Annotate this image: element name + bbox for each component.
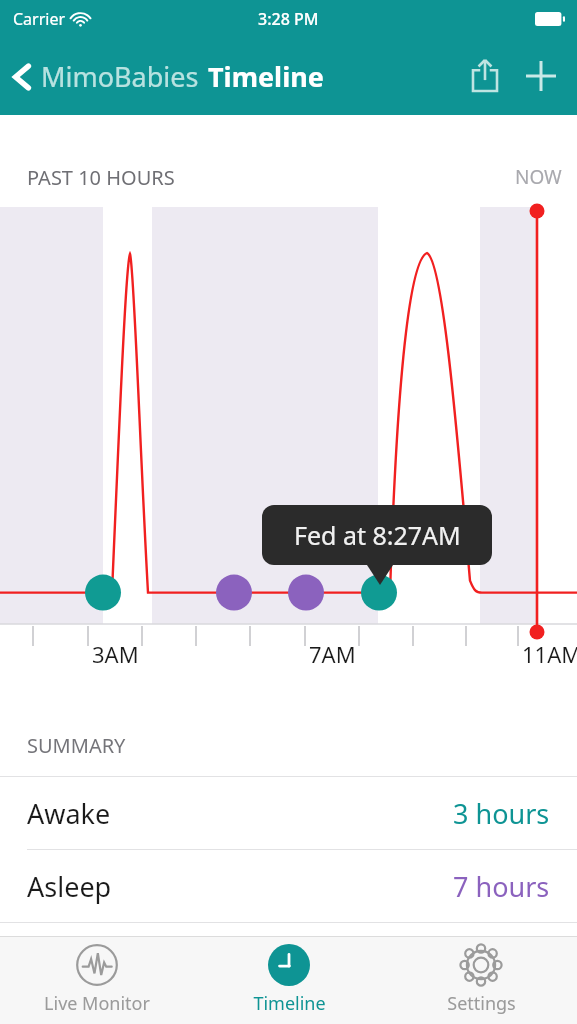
button[interactable]: Fed at 8:27AM xyxy=(262,505,492,565)
staticText: 3 hours xyxy=(453,795,550,832)
button[interactable]: Timeline xyxy=(193,936,385,1024)
staticText: Live Monitor xyxy=(44,991,150,1016)
staticText: Asleep xyxy=(27,868,112,905)
button[interactable]: MimoBabies xyxy=(0,52,332,101)
button[interactable]: Live Monitor xyxy=(0,936,193,1024)
staticText: 7 hours xyxy=(453,868,550,905)
staticText: Carrier xyxy=(13,8,66,30)
staticText: NOW xyxy=(515,164,562,190)
staticText: Settings xyxy=(447,991,516,1016)
button[interactable]: Asleep xyxy=(0,850,577,922)
staticText: 3AM xyxy=(92,639,139,669)
staticText: Fed at 8:27AM xyxy=(294,518,461,552)
staticText: 3:28 PM xyxy=(258,8,319,30)
staticText: 7AM xyxy=(309,639,356,669)
button[interactable]: Settings xyxy=(385,936,577,1024)
button[interactable]: Awake xyxy=(0,777,577,849)
staticText: PAST 10 HOURS xyxy=(27,164,175,191)
staticText: SUMMARY xyxy=(27,732,126,759)
staticText: Awake xyxy=(27,795,111,832)
staticText: Timeline xyxy=(208,58,324,95)
staticText: MimoBabies xyxy=(41,58,199,95)
button[interactable]: Share xyxy=(457,48,513,104)
staticText: Timeline xyxy=(253,991,326,1016)
button[interactable]: Add xyxy=(513,48,569,104)
staticText: 11AM xyxy=(522,639,577,669)
